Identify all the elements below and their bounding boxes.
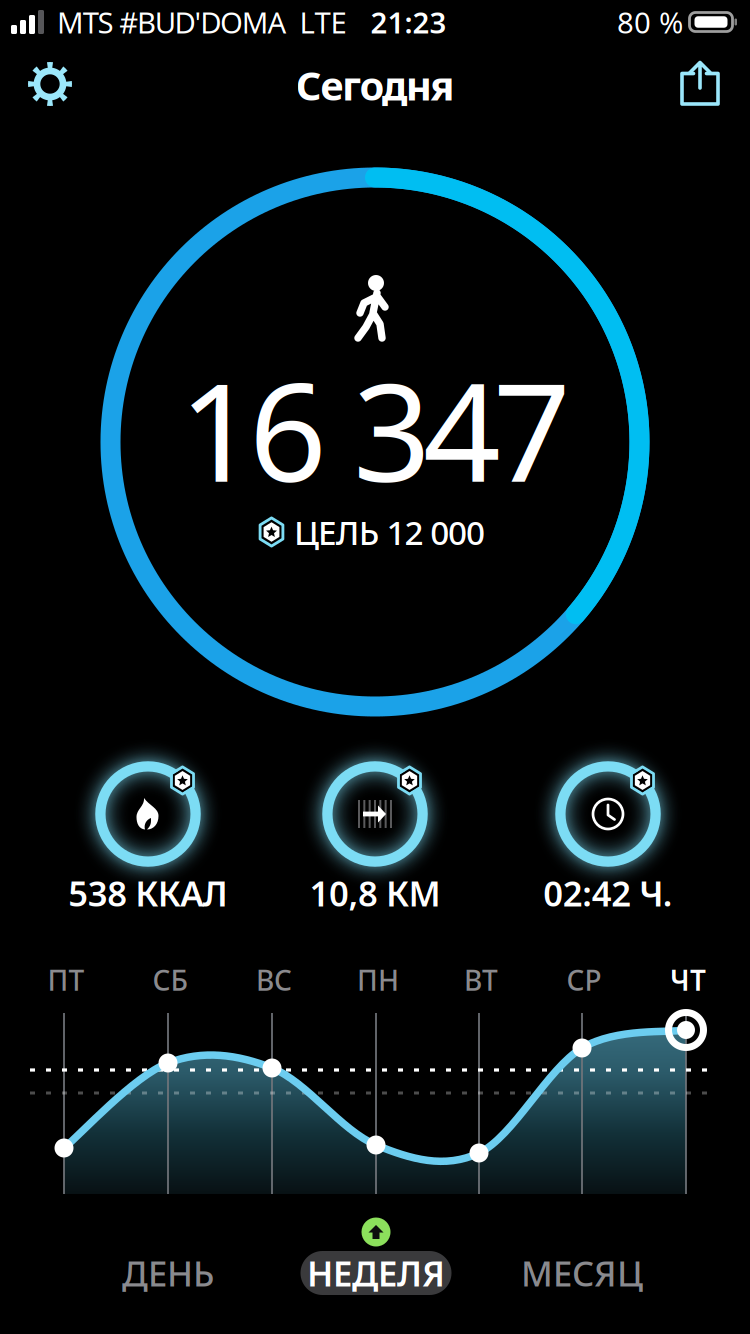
- button[interactable]: МЕСЯЦ: [487, 1242, 677, 1304]
- button[interactable]: Settings: [12, 46, 88, 122]
- button[interactable]: Share: [662, 45, 738, 121]
- staticText: СР: [566, 961, 601, 999]
- staticText: ЧТ: [670, 961, 706, 999]
- staticText: ВТ: [464, 961, 498, 999]
- staticText: MTS #BUD'DOMA: [57, 2, 287, 41]
- staticText: 16: [179, 339, 327, 519]
- staticText: НЕДЕЛЯ: [307, 1250, 445, 1296]
- button[interactable]: ДЕНЬ: [73, 1242, 263, 1304]
- staticText: ЦЕЛЬ 12 000: [294, 510, 485, 554]
- staticText: СБ: [152, 961, 187, 999]
- staticText: ВС: [256, 961, 292, 999]
- staticText: 538 ККАЛ: [68, 870, 228, 916]
- staticText: ПН: [357, 961, 399, 999]
- staticText: ПТ: [47, 961, 84, 999]
- staticText: 21:23: [371, 2, 447, 41]
- staticText: Сегодня: [296, 58, 454, 111]
- staticText: 02:42 Ч.: [543, 870, 673, 916]
- staticText: LTE: [300, 2, 347, 41]
- staticText: 80 %: [617, 2, 683, 41]
- staticText: 10,8 КМ: [309, 870, 440, 916]
- staticText: МЕСЯЦ: [521, 1250, 643, 1296]
- button[interactable]: НЕДЕЛЯ: [300, 1251, 451, 1295]
- staticText: ДЕНЬ: [122, 1250, 214, 1296]
- staticText: 347: [353, 339, 571, 519]
